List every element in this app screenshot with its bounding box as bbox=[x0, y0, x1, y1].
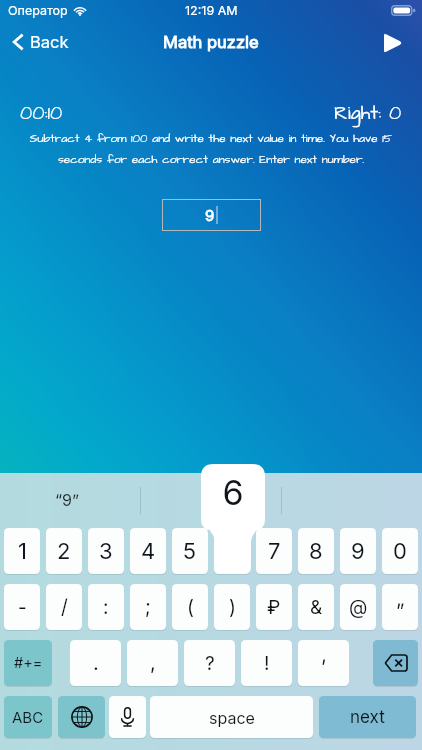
staticText: ) bbox=[229, 596, 236, 619]
staticText: #+= bbox=[14, 654, 43, 672]
button[interactable]: @ bbox=[340, 584, 376, 630]
button[interactable]: ) bbox=[214, 584, 250, 630]
staticText: 9 bbox=[205, 206, 215, 224]
staticText: Math puzzle bbox=[163, 32, 259, 52]
staticText: 12:19 AM bbox=[185, 3, 238, 18]
staticText: Оператор bbox=[8, 3, 68, 18]
staticText: 8 bbox=[309, 538, 323, 565]
staticText: @ bbox=[349, 596, 368, 619]
staticText: next bbox=[350, 707, 385, 728]
button[interactable]: : bbox=[88, 584, 124, 630]
staticText: 1 bbox=[18, 538, 27, 565]
button[interactable]: 8 bbox=[298, 528, 334, 574]
staticText: 00:10 bbox=[20, 100, 63, 127]
staticText: Right: 0 bbox=[334, 100, 402, 127]
button[interactable]: 0 bbox=[382, 528, 418, 574]
staticText: Subtract 4 from 100 and write the next v… bbox=[26, 130, 396, 168]
staticText: “9” bbox=[55, 490, 80, 509]
button[interactable]: . bbox=[70, 640, 121, 686]
button[interactable]: Back bbox=[0, 28, 81, 56]
staticText: ; bbox=[145, 596, 151, 619]
button[interactable]: #+= bbox=[4, 640, 52, 686]
staticText: / bbox=[61, 596, 68, 619]
staticText: 4 bbox=[141, 538, 156, 565]
staticText: ₽ bbox=[267, 596, 281, 619]
button[interactable]: 5 bbox=[172, 528, 208, 574]
button[interactable]: ( bbox=[172, 584, 208, 630]
staticText: ? bbox=[205, 652, 215, 675]
button[interactable]: next bbox=[319, 696, 416, 738]
button[interactable]: & bbox=[298, 584, 334, 630]
button[interactable]: ” bbox=[382, 584, 418, 630]
button[interactable]: Change keyboard bbox=[58, 696, 105, 738]
staticText: 7 bbox=[268, 538, 281, 565]
button[interactable]: 6 bbox=[214, 528, 250, 574]
button[interactable]: 9 bbox=[162, 199, 261, 231]
staticText: ” bbox=[396, 600, 405, 623]
staticText: Back bbox=[30, 32, 69, 52]
button[interactable]: ! bbox=[241, 640, 292, 686]
button[interactable]: 1 bbox=[4, 528, 40, 574]
staticText: 0 bbox=[393, 538, 407, 565]
staticText: 5 bbox=[183, 538, 197, 565]
staticText: & bbox=[310, 596, 323, 619]
button[interactable]: ? bbox=[184, 640, 235, 686]
staticText: ABC bbox=[12, 708, 44, 726]
button[interactable]: ABC bbox=[4, 696, 52, 738]
button[interactable]: , bbox=[127, 640, 178, 686]
button[interactable]: / bbox=[46, 584, 82, 630]
button[interactable]: Backspace bbox=[373, 640, 418, 686]
button[interactable]: ’ bbox=[298, 640, 349, 686]
button[interactable]: 2 bbox=[46, 528, 82, 574]
button[interactable]: 9 bbox=[340, 528, 376, 574]
staticText: . bbox=[93, 651, 99, 675]
button[interactable]: ₽ bbox=[256, 584, 292, 630]
staticText: , bbox=[150, 651, 156, 675]
button[interactable]: 7 bbox=[256, 528, 292, 574]
staticText: 2 bbox=[57, 538, 71, 565]
staticText: space bbox=[209, 708, 255, 727]
button[interactable]: - bbox=[4, 584, 40, 630]
staticText: 3 bbox=[99, 538, 113, 565]
staticText: 9 bbox=[351, 538, 365, 565]
button[interactable]: 3 bbox=[88, 528, 124, 574]
staticText: ( bbox=[187, 596, 194, 619]
button[interactable]: space bbox=[150, 696, 313, 738]
staticText: 6 bbox=[201, 472, 265, 513]
staticText: ! bbox=[264, 652, 270, 675]
staticText: - bbox=[18, 596, 27, 619]
button[interactable]: Start bbox=[377, 26, 409, 58]
button[interactable]: ; bbox=[130, 584, 166, 630]
staticText: : bbox=[103, 596, 109, 619]
staticText: ’ bbox=[321, 656, 326, 679]
button[interactable]: 4 bbox=[130, 528, 166, 574]
button[interactable]: Dictate bbox=[109, 696, 146, 738]
